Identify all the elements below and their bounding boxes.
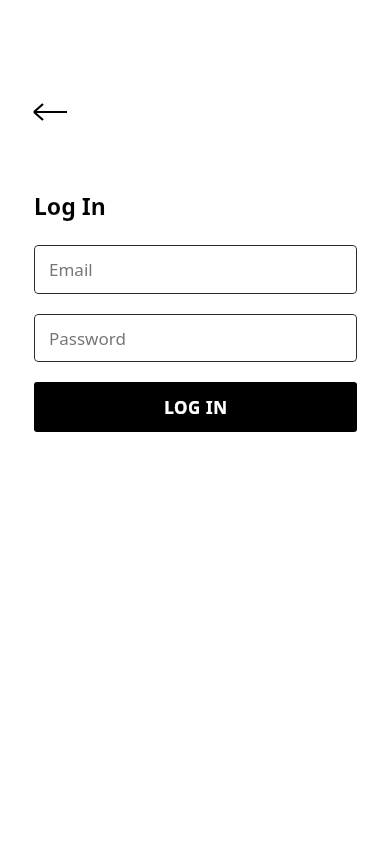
staticText: Email — [49, 258, 93, 281]
button[interactable]: Password — [34, 314, 357, 362]
button[interactable]: Back — [26, 92, 74, 132]
staticText: Password — [49, 327, 126, 350]
button[interactable]: Email — [34, 245, 357, 294]
staticText: Log In — [34, 190, 106, 221]
button[interactable]: LOG IN — [34, 382, 357, 432]
staticText: LOG IN — [164, 396, 228, 419]
